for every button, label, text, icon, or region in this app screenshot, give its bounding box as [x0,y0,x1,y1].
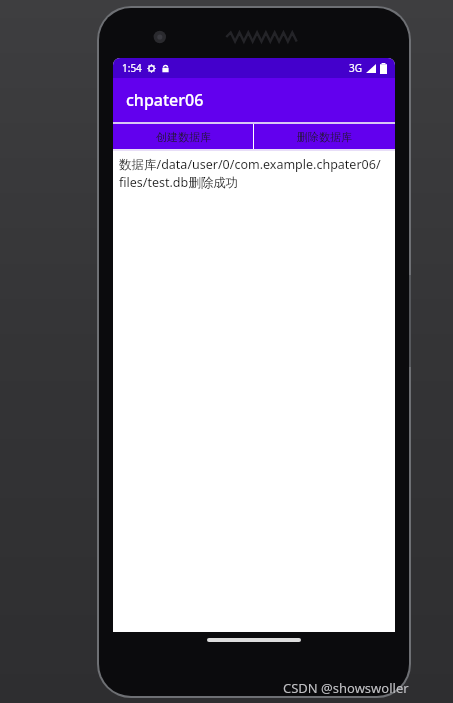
staticText: 删除数据库 [297,130,352,144]
staticText: 数据库/data/user/0/com.example.chpater06/fi… [119,156,391,191]
staticText: 1:54 [122,61,142,75]
staticText: chpater06 [126,89,204,111]
button[interactable]: 创建数据库 [113,124,253,149]
staticText: 3G [349,61,362,75]
staticText: CSDN @showswoller [283,679,409,697]
button[interactable]: 删除数据库 [254,124,395,149]
staticText: 创建数据库 [156,130,211,144]
